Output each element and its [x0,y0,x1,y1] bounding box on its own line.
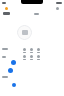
button[interactable]: Scan QR [17,25,32,40]
button[interactable]: Logo [5,7,8,10]
button[interactable]: Profile [56,7,59,10]
